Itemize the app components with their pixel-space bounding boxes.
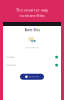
staticText: The smarter way (16, 7, 48, 13)
staticText: Share files (24, 28, 39, 32)
staticText: to share files (19, 13, 44, 18)
staticText: Get started (29, 76, 39, 78)
staticText: Choose how to send (25, 47, 39, 49)
button[interactable]: Share a link (3, 53, 61, 61)
staticText: Send by email (6, 64, 15, 66)
button[interactable]: Get started (20, 74, 44, 80)
staticText: Share a link (6, 56, 14, 58)
button[interactable]: Send by email (3, 61, 61, 69)
